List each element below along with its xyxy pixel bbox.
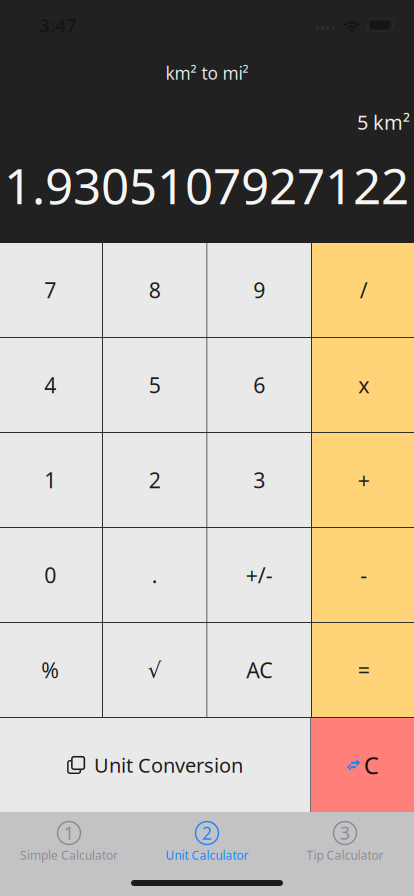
staticText: Simple Calculator bbox=[20, 847, 118, 863]
button[interactable]: 2 bbox=[138, 818, 276, 866]
button[interactable]: 8 bbox=[103, 243, 206, 337]
staticText: 5 bbox=[149, 371, 161, 399]
button[interactable]: 1 bbox=[0, 433, 102, 527]
staticText: +/- bbox=[246, 561, 273, 589]
staticText: 7 bbox=[44, 276, 56, 304]
staticText: x bbox=[358, 371, 369, 399]
button[interactable]: 1 bbox=[0, 818, 138, 866]
staticText: √ bbox=[148, 658, 162, 682]
staticText: km² to mi² bbox=[165, 61, 248, 84]
staticText: 1 bbox=[64, 821, 74, 844]
staticText: 8 bbox=[149, 276, 161, 304]
button[interactable]: C bbox=[311, 718, 414, 812]
button[interactable]: Percent bbox=[0, 623, 102, 717]
staticText: / bbox=[360, 276, 368, 304]
staticText: 3 bbox=[340, 821, 350, 844]
button[interactable]: Plus minus bbox=[207, 528, 311, 622]
button[interactable]: 7 bbox=[0, 243, 102, 337]
staticText: 9 bbox=[253, 276, 265, 304]
staticText: . bbox=[152, 561, 158, 589]
button[interactable]: Add bbox=[312, 433, 414, 527]
staticText: Unit Conversion bbox=[94, 752, 243, 778]
staticText: + bbox=[358, 466, 370, 494]
button[interactable]: 9 bbox=[207, 243, 311, 337]
button[interactable]: Equals bbox=[312, 623, 414, 717]
button[interactable]: 4 bbox=[0, 338, 102, 432]
staticText: 3 bbox=[253, 466, 265, 494]
button[interactable]: Divide bbox=[312, 243, 414, 337]
staticText: Tip Calculator bbox=[306, 847, 383, 863]
button[interactable]: 6 bbox=[207, 338, 311, 432]
button[interactable]: Unit Conversion bbox=[0, 718, 310, 812]
staticText: 1 bbox=[44, 466, 56, 494]
button[interactable]: Decimal point bbox=[103, 528, 206, 622]
button[interactable]: Subtract bbox=[312, 528, 414, 622]
button[interactable]: 3 bbox=[207, 433, 311, 527]
staticText: 5 km² bbox=[357, 109, 410, 135]
staticText: 2 bbox=[149, 466, 161, 494]
button[interactable]: 5 bbox=[103, 338, 206, 432]
staticText: 2 bbox=[202, 821, 212, 844]
button[interactable]: All clear bbox=[207, 623, 311, 717]
staticText: 1.9305107927122 bbox=[4, 152, 409, 218]
button[interactable]: Multiply bbox=[312, 338, 414, 432]
staticText: AC bbox=[246, 656, 272, 684]
button[interactable]: 0 bbox=[0, 528, 102, 622]
staticText: 0 bbox=[44, 561, 56, 589]
staticText: C bbox=[364, 749, 379, 781]
staticText: Unit Calculator bbox=[165, 847, 248, 863]
staticText: = bbox=[358, 656, 370, 684]
staticText: - bbox=[360, 561, 367, 589]
staticText: 3:47 bbox=[39, 13, 77, 37]
button[interactable]: 2 bbox=[103, 433, 206, 527]
staticText: % bbox=[41, 656, 59, 684]
button[interactable]: Square root bbox=[103, 623, 206, 717]
button[interactable]: 3 bbox=[276, 818, 414, 866]
staticText: 4 bbox=[44, 371, 56, 399]
staticText: 6 bbox=[253, 371, 265, 399]
